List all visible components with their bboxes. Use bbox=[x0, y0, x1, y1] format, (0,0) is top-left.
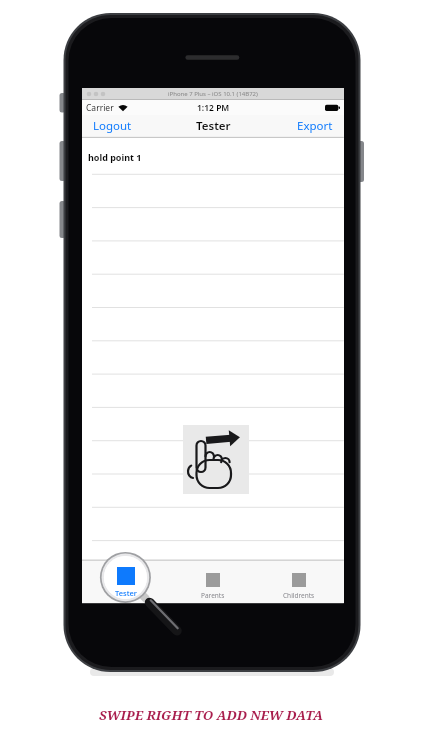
staticText: Childrents bbox=[283, 591, 315, 600]
staticText: SWIPE RIGHT TO ADD NEW DATA bbox=[99, 706, 323, 724]
staticText: Carrier bbox=[86, 102, 114, 114]
staticText: iPhone 7 Plus – iOS 10.1 (14B72) bbox=[168, 90, 258, 98]
staticText: Export bbox=[297, 118, 333, 134]
button[interactable]: Logout bbox=[90, 115, 134, 137]
staticText: Tester bbox=[196, 118, 231, 134]
staticText: Tester bbox=[118, 591, 137, 600]
button[interactable] bbox=[183, 425, 249, 494]
button[interactable]: hold point 1 bbox=[82, 138, 344, 174]
button[interactable]: Parents bbox=[180, 561, 246, 602]
button[interactable]: Tester bbox=[94, 561, 160, 602]
staticText: Parents bbox=[201, 591, 225, 600]
staticText: Tester bbox=[115, 588, 137, 598]
staticText: 1:12 PM bbox=[197, 102, 230, 114]
staticText: Logout bbox=[93, 118, 132, 134]
button[interactable]: Childrents bbox=[266, 561, 332, 602]
button[interactable]: Tester bbox=[104, 556, 147, 599]
staticText: hold point 1 bbox=[88, 151, 142, 163]
button[interactable]: Export bbox=[293, 115, 337, 137]
